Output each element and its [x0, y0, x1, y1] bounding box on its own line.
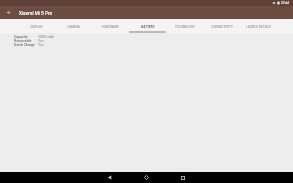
button[interactable]: HARDWARE	[92, 19, 129, 33]
button[interactable]: DISPLAY	[18, 19, 55, 33]
staticText: DISPLAY	[30, 25, 43, 29]
staticText: Quick Charge	[14, 43, 35, 47]
button[interactable]: BATTERY	[129, 19, 166, 33]
staticText: Capacity	[14, 35, 28, 39]
staticText: Removable	[14, 39, 32, 43]
staticText: Yes	[38, 43, 44, 47]
button[interactable]: Navigate up	[3, 6, 16, 19]
staticText: Yes	[38, 39, 44, 43]
button[interactable]: Home	[137, 172, 155, 183]
staticText: Xiaomi Mi 5 Pro	[19, 11, 53, 17]
button[interactable]: Recent apps	[174, 172, 192, 183]
staticText: BATTERY	[141, 25, 155, 29]
staticText: 22:44	[281, 1, 290, 5]
staticText: CONNECTIVITY	[211, 25, 233, 29]
button[interactable]: TECHNOLOGY	[166, 19, 203, 33]
button[interactable]: LAUNCH DETAILS	[240, 19, 277, 33]
staticText: 3000 mAh	[38, 35, 55, 39]
staticText: CAMERA	[67, 25, 80, 29]
staticText: LAUNCH DETAILS	[246, 25, 271, 29]
staticText: HARDWARE	[102, 25, 119, 29]
button[interactable]: CONNECTIVITY	[203, 19, 240, 33]
button[interactable]: CAMERA	[55, 19, 92, 33]
button[interactable]: Back	[100, 172, 118, 183]
staticText: TECHNOLOGY	[175, 25, 195, 29]
